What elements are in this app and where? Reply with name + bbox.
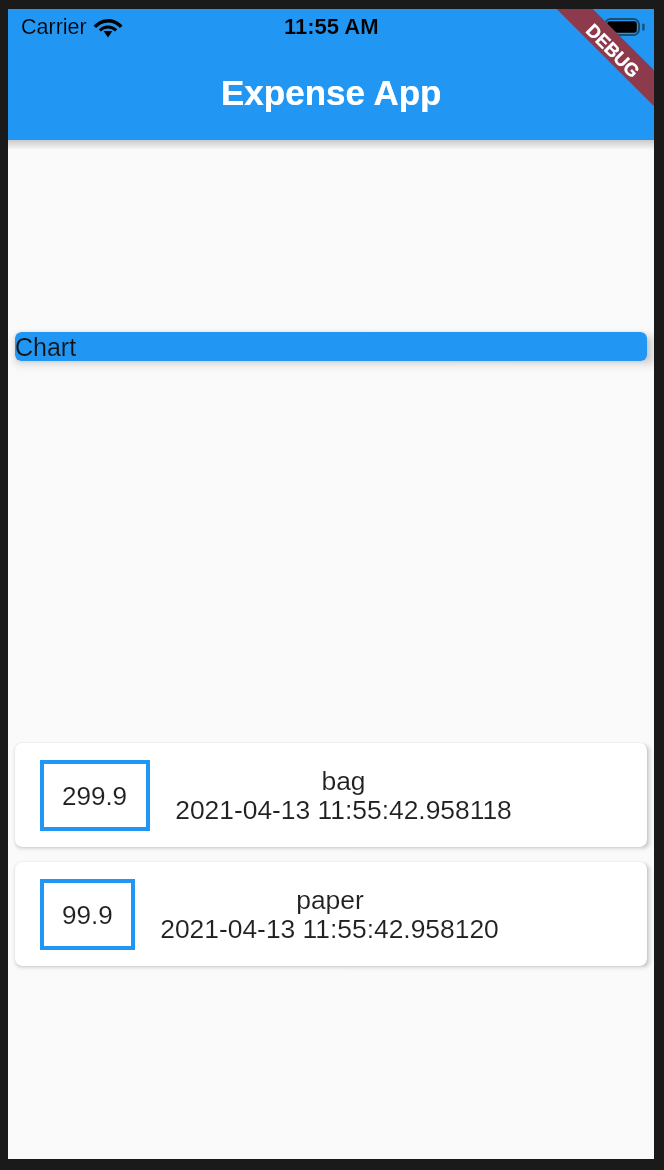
staticText: Carrier [21, 15, 87, 39]
staticText: 11:55 AM [284, 14, 379, 39]
staticText: 2021-04-13 11:55:42.958118 [175, 795, 512, 824]
staticText: Expense App [221, 73, 442, 112]
staticText: 299.9 [62, 781, 128, 810]
staticText: 2021-04-13 11:55:42.958120 [160, 914, 499, 943]
staticText: bag [321, 766, 366, 795]
other: Battery [604, 18, 645, 36]
other: Wi-Fi [95, 18, 121, 37]
staticText: 99.9 [62, 900, 113, 929]
button[interactable]: 299.9 [15, 743, 647, 847]
staticText: Chart [15, 333, 77, 361]
staticText: paper [296, 885, 364, 914]
button[interactable]: Chart [15, 332, 647, 361]
button[interactable]: 99.9 [15, 862, 647, 966]
staticText: DEBUG [582, 20, 644, 82]
